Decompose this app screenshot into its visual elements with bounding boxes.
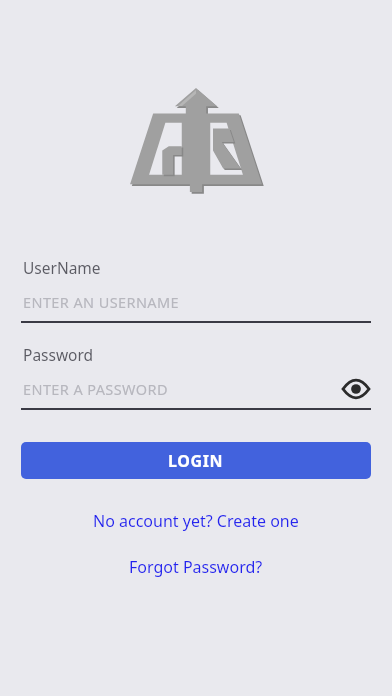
staticText: ENTER AN USERNAME [23,292,179,312]
other: GTR logo [128,88,264,192]
button[interactable]: LOGIN [21,442,371,479]
staticText: Password [23,344,94,365]
button[interactable]: Forgot Password? [0,551,392,583]
staticText: UserName [23,257,101,278]
button[interactable]: No account yet? Create one [0,505,392,537]
staticText: LOGIN [168,450,224,472]
staticText: ENTER A PASSWORD [23,379,168,399]
button[interactable]: Show password [341,377,371,401]
staticText: No account yet? Create one [93,510,299,532]
button[interactable]: Password [21,341,371,410]
button[interactable]: UserName [21,254,371,323]
staticText: Forgot Password? [129,556,263,578]
